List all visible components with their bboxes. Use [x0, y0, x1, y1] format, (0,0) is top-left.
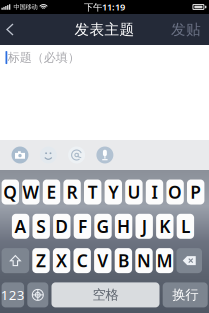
button[interactable]: S	[32, 214, 50, 239]
staticText: P	[190, 180, 201, 203]
button[interactable]: K	[156, 214, 173, 239]
button[interactable]: T	[84, 179, 101, 204]
staticText: O	[168, 180, 182, 203]
staticText: R	[67, 180, 78, 203]
button[interactable]: B	[115, 248, 132, 273]
staticText: 下午11:19	[84, 1, 125, 13]
button[interactable]: Next keyboard	[27, 282, 48, 307]
button[interactable]: E	[43, 179, 60, 204]
staticText: 123	[1, 286, 25, 304]
button[interactable]: 空格	[51, 282, 159, 307]
button[interactable]: W	[22, 179, 40, 204]
staticText: 空格	[92, 287, 118, 303]
button[interactable]: Emoji	[40, 146, 57, 163]
staticText: E	[46, 180, 56, 203]
staticText: 标题（必填）	[8, 50, 80, 65]
staticText: M	[157, 249, 173, 272]
staticText: Q	[3, 180, 17, 203]
button[interactable]: H	[115, 214, 132, 239]
button[interactable]: M	[156, 248, 173, 273]
staticText: F	[78, 215, 87, 238]
button[interactable]: V	[94, 248, 111, 273]
staticText: X	[56, 249, 67, 272]
staticText: K	[159, 215, 170, 238]
button[interactable]: U	[125, 179, 143, 204]
button[interactable]: O	[166, 179, 184, 204]
staticText: V	[97, 249, 108, 272]
staticText: I	[151, 180, 157, 203]
button[interactable]: J	[135, 214, 153, 239]
button[interactable]: L	[177, 214, 194, 239]
staticText: 发贴	[171, 20, 201, 38]
button[interactable]: Y	[105, 179, 122, 204]
button[interactable]: I	[146, 179, 163, 204]
button[interactable]: 发贴	[171, 14, 209, 45]
staticText: H	[117, 215, 130, 238]
button[interactable]: 换行	[163, 282, 208, 307]
staticText: U	[127, 180, 140, 203]
button[interactable]: C	[73, 248, 91, 273]
staticText: W	[22, 180, 39, 203]
button[interactable]: N	[135, 248, 153, 273]
staticText: G	[96, 215, 109, 238]
button[interactable]: F	[74, 214, 91, 239]
button[interactable]: P	[187, 179, 204, 204]
staticText: C	[77, 249, 88, 272]
staticText: D	[55, 215, 68, 238]
button[interactable]: A	[12, 214, 29, 239]
button[interactable]: Shift	[2, 248, 29, 273]
staticText: S	[36, 215, 46, 238]
button[interactable]: Delete	[176, 248, 202, 273]
button[interactable]: R	[63, 179, 81, 204]
staticText: 发表主题	[74, 20, 134, 38]
button[interactable]: Back	[0, 14, 25, 45]
button[interactable]: X	[53, 248, 70, 273]
button[interactable]: 123	[2, 282, 24, 307]
button[interactable]: Q	[2, 179, 19, 204]
staticText: Y	[108, 180, 118, 203]
staticText: 换行	[172, 287, 198, 303]
staticText: B	[118, 249, 129, 272]
button[interactable]: Mention	[68, 146, 85, 163]
button[interactable]: Voice	[96, 146, 113, 163]
staticText: T	[88, 180, 98, 203]
button[interactable]: D	[53, 214, 70, 239]
staticText: Z	[36, 249, 46, 272]
staticText: L	[181, 215, 190, 238]
button[interactable]: Photo	[11, 146, 28, 163]
staticText: A	[15, 215, 27, 238]
staticText: 中国移动	[13, 3, 37, 11]
staticText: J	[142, 215, 147, 238]
staticText: N	[137, 249, 151, 272]
button[interactable]: G	[94, 214, 112, 239]
button[interactable]: Z	[32, 248, 50, 273]
